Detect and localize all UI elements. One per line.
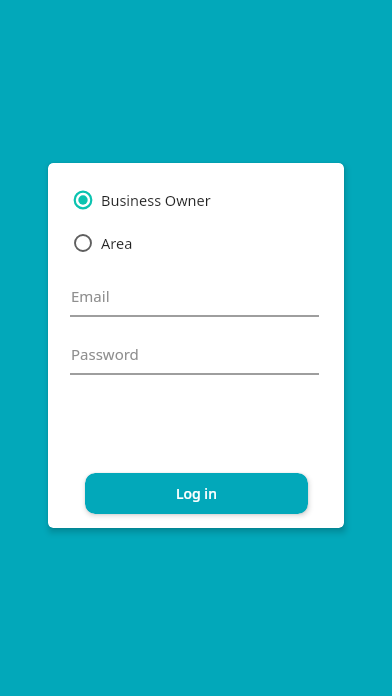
staticText: Area — [101, 233, 133, 253]
button[interactable]: Business Owner — [73, 188, 293, 212]
button[interactable]: Email — [70, 281, 319, 317]
button[interactable]: Password — [70, 339, 319, 375]
staticText: Business Owner — [101, 190, 211, 210]
staticText: Password — [71, 344, 139, 364]
staticText: Email — [71, 286, 110, 306]
button[interactable]: Log in — [85, 473, 308, 514]
button[interactable]: Area — [73, 231, 293, 255]
staticText: Log in — [176, 484, 217, 503]
